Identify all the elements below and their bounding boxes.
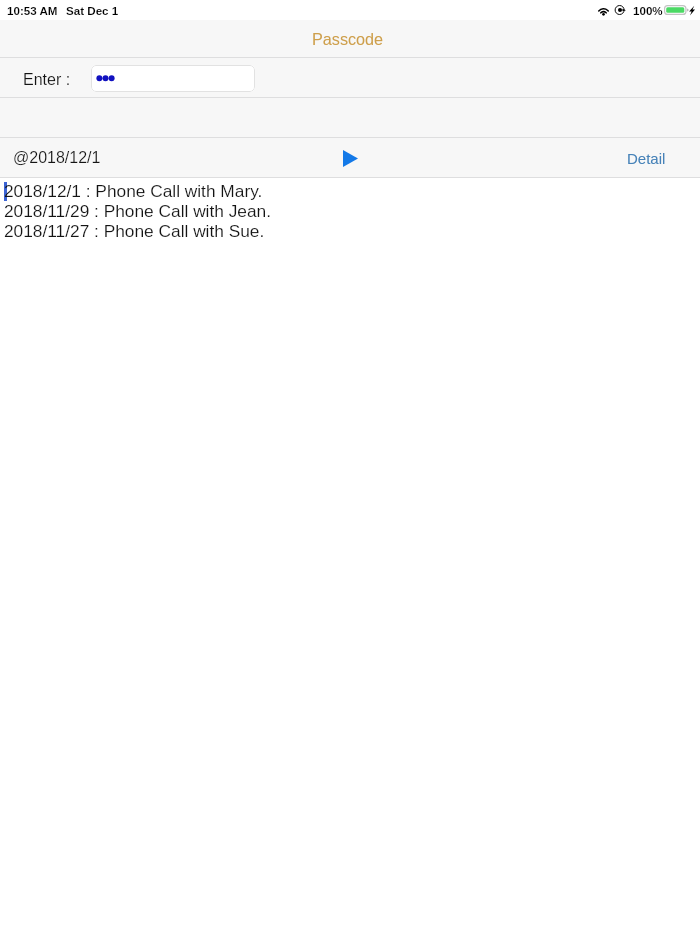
button[interactable]: Detail <box>627 138 666 178</box>
button[interactable]: 2018/11/29 : Phone Call with Jean. <box>4 200 700 220</box>
button[interactable]: Call log notes <box>0 178 700 934</box>
staticText: 10:53 AM <box>7 4 58 17</box>
button[interactable]: Enter : <box>23 58 71 98</box>
button[interactable]: 2018/11/27 : Phone Call with Sue. <box>4 220 700 240</box>
staticText: @2018/12/1 <box>13 149 101 167</box>
staticText: 2018/11/29 : Phone Call with Jean. <box>4 201 272 220</box>
button[interactable]: @2018/12/1 <box>13 138 101 178</box>
staticText: Passcode <box>312 30 384 48</box>
staticText: 2018/12/1 : Phone Call with Mary. <box>4 181 263 200</box>
staticText: 2018/11/27 : Phone Call with Sue. <box>4 221 265 240</box>
button[interactable]: Passcode entry field <box>91 65 255 92</box>
staticText: Enter : <box>23 71 71 89</box>
button[interactable]: 2018/12/1 : Phone Call with Mary. <box>4 180 700 200</box>
staticText: Sat Dec 1 <box>66 4 119 17</box>
staticText: Detail <box>627 150 666 167</box>
button[interactable]: Passcode <box>312 30 384 48</box>
staticText: 100% <box>633 4 663 17</box>
button[interactable]: Play <box>332 138 369 177</box>
